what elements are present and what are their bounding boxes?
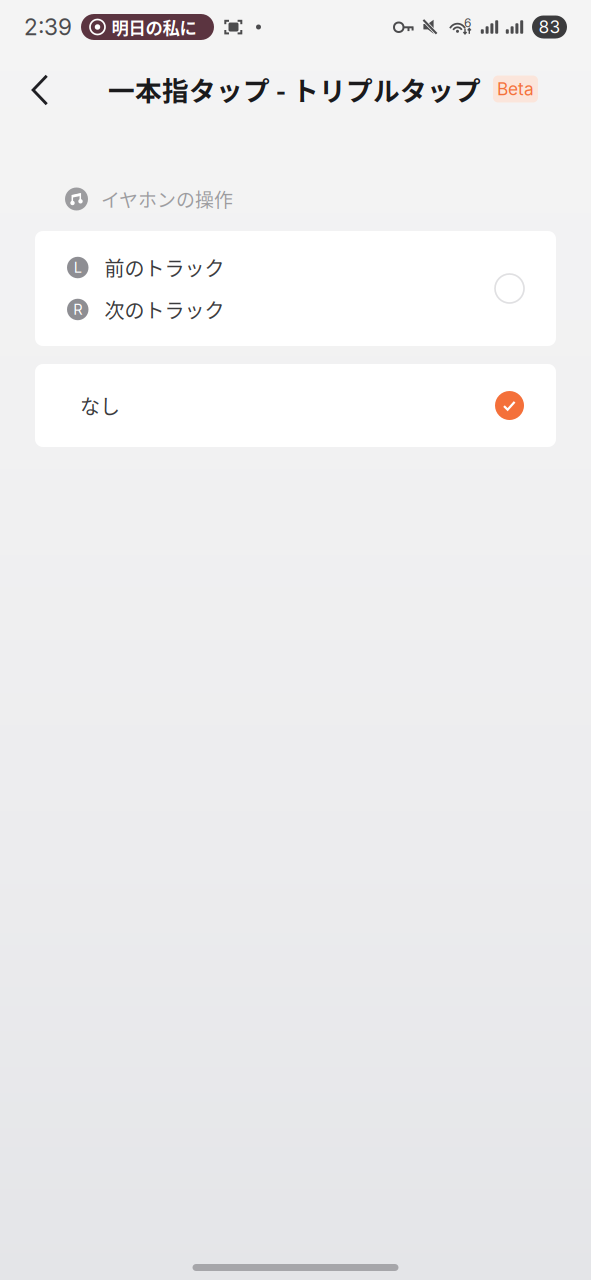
staticText: 83 (538, 16, 560, 37)
staticText: 一本指タップ - トリプルタップ (108, 70, 481, 108)
staticText: Beta (497, 78, 534, 99)
staticText: 6 (464, 16, 471, 30)
staticText: L (74, 259, 82, 276)
staticText: 前のトラック (104, 253, 224, 282)
staticText: なし (80, 391, 120, 420)
staticText: 明日の私に (111, 14, 196, 40)
button[interactable]: なし (35, 364, 556, 447)
staticText: イヤホンの操作 (101, 185, 233, 213)
staticText: R (73, 301, 82, 318)
staticText: 2:39 (24, 13, 72, 41)
button[interactable]: L (35, 231, 556, 346)
button[interactable]: Back (17, 66, 63, 112)
staticText: 次のトラック (104, 295, 224, 324)
